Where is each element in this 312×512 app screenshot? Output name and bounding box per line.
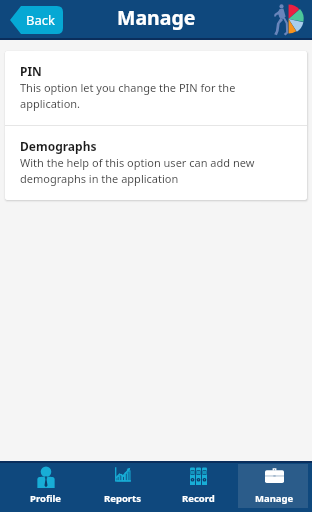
staticText: Record: [182, 492, 215, 505]
button[interactable]: Profile: [7, 463, 84, 512]
button[interactable]: Back: [10, 6, 63, 34]
staticText: Profile: [30, 492, 61, 505]
button[interactable]: Reports: [84, 463, 160, 512]
button[interactable]: Record: [160, 463, 236, 512]
staticText: This option let you change the PIN for t…: [20, 80, 292, 111]
staticText: PIN: [20, 63, 42, 79]
staticText: Manage: [255, 492, 294, 505]
button[interactable]: Manage: [236, 463, 312, 512]
staticText: With the help of this option user can ad…: [20, 155, 292, 186]
button[interactable]: Demographs: [5, 126, 307, 200]
staticText: Reports: [104, 492, 141, 505]
button[interactable]: PIN: [5, 51, 307, 125]
other: App logo: [272, 3, 306, 37]
staticText: Back: [26, 11, 55, 29]
staticText: Demographs: [20, 138, 97, 154]
staticText: Manage: [117, 4, 196, 31]
